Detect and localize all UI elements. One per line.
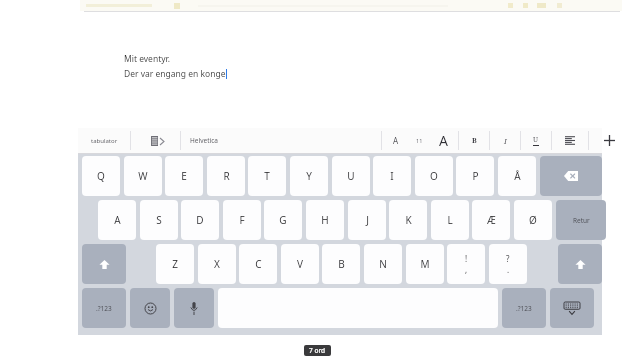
button[interactable]: Retur [556, 200, 606, 240]
staticText: .?123 [96, 304, 112, 313]
staticText: H [321, 213, 329, 227]
button[interactable]: Æ [472, 200, 510, 240]
button[interactable]: F [223, 200, 261, 240]
staticText: I [390, 169, 394, 183]
button[interactable]: K [389, 200, 427, 240]
staticText: C [255, 257, 262, 271]
button[interactable]: M [406, 244, 444, 284]
button[interactable]: Insert [589, 128, 629, 153]
staticText: F [239, 213, 245, 227]
staticText: Æ [487, 213, 496, 227]
staticText: V [297, 257, 303, 271]
staticText: Q [97, 169, 105, 183]
staticText: T [264, 169, 270, 183]
staticText: R [223, 169, 230, 183]
staticText: Z [172, 257, 178, 271]
button[interactable]: P [456, 156, 494, 196]
staticText: O [430, 169, 438, 183]
staticText: A [393, 135, 399, 146]
button[interactable]: Bold [459, 128, 489, 153]
button[interactable]: D [181, 200, 219, 240]
button[interactable]: Emoji [130, 288, 170, 328]
staticText: M [420, 257, 430, 271]
staticText: Retur [573, 216, 590, 225]
button[interactable]: 11 [409, 128, 429, 153]
button[interactable]: G [264, 200, 302, 240]
button[interactable]: U [332, 156, 370, 196]
button[interactable]: Dictate [174, 288, 214, 328]
button[interactable]: Hide keyboard [550, 288, 594, 328]
staticText: Å [514, 169, 521, 183]
staticText: ? [506, 253, 510, 264]
staticText: G [279, 213, 287, 227]
staticText: ! [465, 253, 468, 264]
button[interactable]: C [239, 244, 277, 284]
button[interactable]: Alignment [552, 128, 588, 153]
button[interactable]: Underline [521, 128, 551, 153]
staticText: Ø [529, 213, 537, 227]
staticText: 11 [416, 137, 423, 144]
button[interactable]: Shift [558, 244, 602, 284]
button[interactable]: V [281, 244, 319, 284]
button[interactable]: .?123 [502, 288, 546, 328]
staticText: , [465, 264, 468, 275]
staticText: Helvetica [190, 136, 218, 145]
staticText: B [472, 136, 477, 146]
button[interactable]: S [140, 200, 178, 240]
staticText: L [447, 213, 453, 227]
staticText: N [379, 257, 387, 271]
staticText: U [347, 169, 355, 183]
button[interactable]: Indent [132, 128, 178, 153]
button[interactable]: Increase font size [429, 128, 457, 153]
button[interactable]: L [431, 200, 469, 240]
button[interactable]: T [248, 156, 286, 196]
staticText: I [504, 136, 507, 146]
button[interactable]: B [322, 244, 360, 284]
staticText: J [366, 213, 369, 227]
button[interactable]: Decrease font size [383, 128, 409, 153]
staticText: K [405, 213, 412, 227]
staticText: Der var engang en konge [124, 68, 226, 80]
staticText: tabulator [91, 137, 118, 145]
staticText: S [156, 213, 162, 227]
staticText: E [181, 169, 187, 183]
button[interactable]: Backspace [540, 156, 602, 196]
button[interactable]: Y [290, 156, 328, 196]
button[interactable]: .?123 [82, 288, 126, 328]
staticText: U [533, 135, 539, 145]
button[interactable]: Å [498, 156, 536, 196]
button[interactable]: Ø [514, 200, 552, 240]
button[interactable]: E [165, 156, 203, 196]
button[interactable]: tabulator [80, 128, 128, 153]
button[interactable]: Q [82, 156, 120, 196]
staticText: . [507, 264, 510, 275]
button[interactable]: 7 ord [304, 345, 331, 356]
button[interactable]: Italic [490, 128, 520, 153]
button[interactable]: Helvetica [182, 128, 272, 153]
staticText: 7 ord [309, 346, 326, 355]
staticText: W [138, 169, 148, 183]
button[interactable]: W [124, 156, 162, 196]
button[interactable]: O [415, 156, 453, 196]
button[interactable]: ! [447, 244, 485, 284]
staticText: Mit eventyr. [124, 53, 171, 65]
staticText: .?123 [516, 304, 532, 313]
staticText: A [114, 213, 121, 227]
button[interactable]: X [198, 244, 236, 284]
button[interactable]: R [207, 156, 245, 196]
staticText: A [439, 131, 448, 150]
staticText: P [472, 169, 479, 183]
button[interactable]: I [373, 156, 411, 196]
button[interactable]: N [364, 244, 402, 284]
staticText: X [214, 257, 220, 271]
staticText: Y [306, 169, 312, 183]
button[interactable]: ? [489, 244, 527, 284]
staticText: D [196, 213, 204, 227]
button[interactable]: Z [156, 244, 194, 284]
button[interactable]: H [306, 200, 344, 240]
button[interactable]: A [98, 200, 136, 240]
staticText: B [338, 257, 345, 271]
button[interactable]: J [348, 200, 386, 240]
button[interactable]: Shift [82, 244, 126, 284]
